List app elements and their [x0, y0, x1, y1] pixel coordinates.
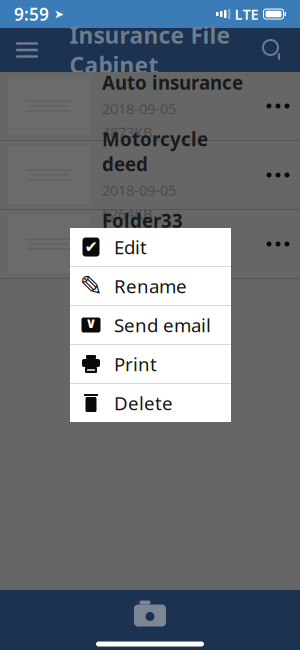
- staticText: Motorcycle deed: [102, 127, 208, 176]
- staticText: 9:59: [14, 2, 54, 25]
- staticText: 1120KB: [102, 260, 153, 280]
- staticText: Print: [114, 352, 157, 376]
- staticText: Folder33: [102, 208, 183, 233]
- staticText: Rename: [114, 274, 187, 298]
- staticText: Delete: [114, 391, 173, 415]
- button[interactable]: Search: [251, 28, 295, 72]
- button[interactable]: Print: [70, 345, 231, 384]
- button[interactable]: Folder33: [0, 210, 300, 279]
- button[interactable]: ∨: [70, 306, 231, 345]
- button[interactable]: Auto insurance: [0, 72, 300, 141]
- button[interactable]: Camera: [124, 593, 176, 633]
- staticText: ✔: [84, 238, 97, 256]
- button[interactable]: Menu: [5, 28, 49, 72]
- staticText: LTE: [234, 4, 258, 24]
- staticText: 5264KB: [102, 204, 153, 223]
- staticText: ➤: [54, 7, 64, 21]
- staticText: ∨: [85, 315, 97, 331]
- button[interactable]: ✔: [70, 228, 231, 267]
- staticText: ✎: [79, 270, 102, 302]
- staticText: 4873KB: [102, 122, 153, 142]
- button[interactable]: Delete: [70, 384, 231, 422]
- staticText: Edit: [114, 235, 147, 259]
- staticText: 2018-09-05: [102, 237, 176, 256]
- staticText: 2018-09-05: [102, 180, 176, 200]
- button[interactable]: Motorcycle deed: [0, 141, 300, 210]
- staticText: Send email: [114, 313, 211, 337]
- button[interactable]: ✎: [70, 267, 231, 306]
- staticText: 2018-09-05: [102, 99, 176, 118]
- staticText: Insurance File Cabinet: [69, 20, 230, 80]
- staticText: Auto insurance: [102, 70, 243, 95]
